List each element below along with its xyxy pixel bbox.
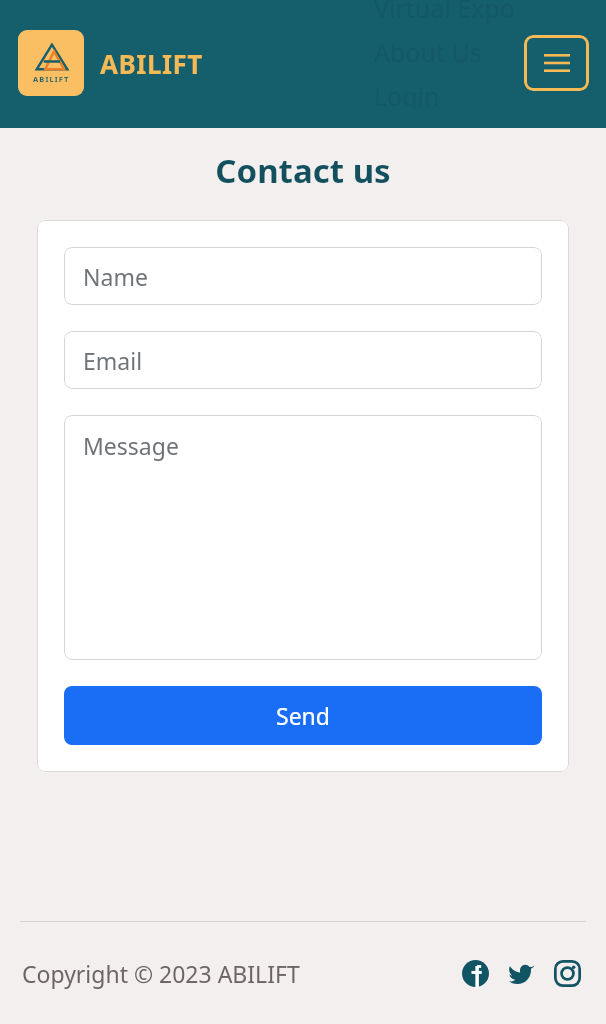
button[interactable]: Twitter <box>504 956 538 990</box>
button[interactable]: ABILIFT logo <box>18 30 84 96</box>
staticText: ABILIFT <box>100 46 203 81</box>
button[interactable]: Instagram <box>550 956 584 990</box>
button[interactable]: Message <box>64 415 542 660</box>
staticText: Name <box>83 261 148 292</box>
staticText: ABILIFT <box>33 74 70 84</box>
button[interactable]: Email <box>64 331 542 389</box>
staticText: Message <box>83 430 179 461</box>
button[interactable]: Send <box>64 686 542 745</box>
staticText: Copyright © 2023 ABILIFT <box>22 958 300 989</box>
staticText: Send <box>276 700 330 731</box>
button[interactable]: Facebook <box>458 956 492 990</box>
staticText: Contact us <box>0 148 606 193</box>
button[interactable]: Name <box>64 247 542 305</box>
staticText: Email <box>83 345 143 376</box>
button[interactable]: Menu <box>524 35 589 91</box>
